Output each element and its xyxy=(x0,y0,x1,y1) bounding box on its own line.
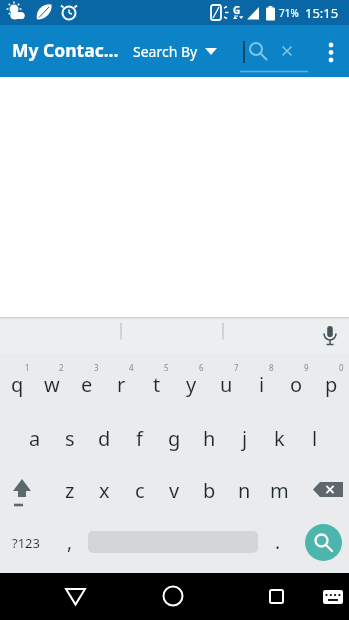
button[interactable]: h xyxy=(192,412,227,465)
button[interactable] xyxy=(45,573,105,620)
button[interactable] xyxy=(317,573,349,620)
staticText: d xyxy=(98,425,111,452)
button[interactable] xyxy=(305,524,342,561)
staticText: h xyxy=(203,425,216,452)
button[interactable]: Search By xyxy=(133,25,217,77)
button[interactable]: t xyxy=(139,354,174,412)
button[interactable] xyxy=(297,465,349,519)
staticText: 5 xyxy=(164,362,169,373)
staticText: 2 xyxy=(59,362,64,373)
button[interactable]: d xyxy=(87,412,122,465)
button[interactable]: m xyxy=(262,465,297,519)
button[interactable]: k xyxy=(262,412,297,465)
button[interactable]: i xyxy=(244,354,279,412)
staticText: r xyxy=(117,371,126,398)
staticText: 71% xyxy=(279,6,299,20)
staticText: a xyxy=(29,425,41,452)
staticText: k xyxy=(274,425,285,452)
button[interactable]: v xyxy=(157,465,192,519)
staticText: 6 xyxy=(199,362,204,373)
button[interactable]: My Contac... xyxy=(12,38,119,62)
staticText: p xyxy=(325,371,338,398)
staticText: g xyxy=(168,425,181,452)
staticText: 4 xyxy=(129,362,134,373)
staticText: 7 xyxy=(234,362,239,373)
button[interactable]: p xyxy=(314,354,349,412)
staticText: z xyxy=(65,477,75,504)
button[interactable]: g xyxy=(157,412,192,465)
staticText: 9 xyxy=(304,362,309,373)
staticText: o xyxy=(290,371,303,398)
button[interactable]: a xyxy=(17,412,52,465)
staticText: n xyxy=(238,477,251,504)
staticText: x xyxy=(99,477,110,504)
button[interactable]: b xyxy=(192,465,227,519)
staticText: c xyxy=(135,477,145,504)
staticText: G xyxy=(233,3,241,17)
button[interactable]: f xyxy=(122,412,157,465)
button[interactable]: c xyxy=(122,465,157,519)
staticText: v xyxy=(169,477,180,504)
button[interactable]: y xyxy=(174,354,209,412)
button[interactable]: w xyxy=(34,354,69,412)
staticText: w xyxy=(44,371,60,398)
button[interactable] xyxy=(240,573,300,620)
button[interactable]: n xyxy=(227,465,262,519)
button[interactable]: u xyxy=(209,354,244,412)
button[interactable]: . xyxy=(258,519,298,573)
staticText: 8 xyxy=(269,362,274,373)
staticText: , xyxy=(67,529,73,555)
button[interactable]: l xyxy=(297,412,332,465)
button[interactable]: o xyxy=(279,354,314,412)
staticText: . xyxy=(275,529,281,555)
staticText: m xyxy=(270,477,289,504)
staticText: t xyxy=(153,371,161,398)
button[interactable] xyxy=(143,573,203,620)
button[interactable]: x xyxy=(87,465,122,519)
button[interactable] xyxy=(238,33,310,73)
button[interactable]: z xyxy=(52,465,87,519)
staticText: e xyxy=(81,371,93,398)
button[interactable]: e xyxy=(69,354,104,412)
staticText: 15:15 xyxy=(305,4,339,22)
button[interactable]: j xyxy=(227,412,262,465)
staticText: j xyxy=(242,425,248,452)
staticText: l xyxy=(312,425,318,452)
staticText: y xyxy=(186,371,197,398)
staticText: u xyxy=(220,371,233,398)
staticText: q xyxy=(11,371,24,398)
button[interactable]: ?123 xyxy=(0,519,52,573)
button[interactable]: , xyxy=(52,519,88,573)
staticText: 0 xyxy=(339,362,344,373)
staticText: i xyxy=(259,371,265,398)
button[interactable]: q xyxy=(0,354,34,412)
button[interactable] xyxy=(0,465,52,519)
staticText: ?123 xyxy=(12,534,40,552)
staticText: s xyxy=(65,425,75,452)
button[interactable]: r xyxy=(104,354,139,412)
staticText: b xyxy=(203,477,216,504)
button[interactable]: s xyxy=(52,412,87,465)
staticText: 3 xyxy=(94,362,99,373)
button[interactable] xyxy=(318,25,349,77)
staticText: Search By xyxy=(133,42,198,61)
staticText: f xyxy=(136,425,143,452)
staticText: 1 xyxy=(25,362,30,373)
